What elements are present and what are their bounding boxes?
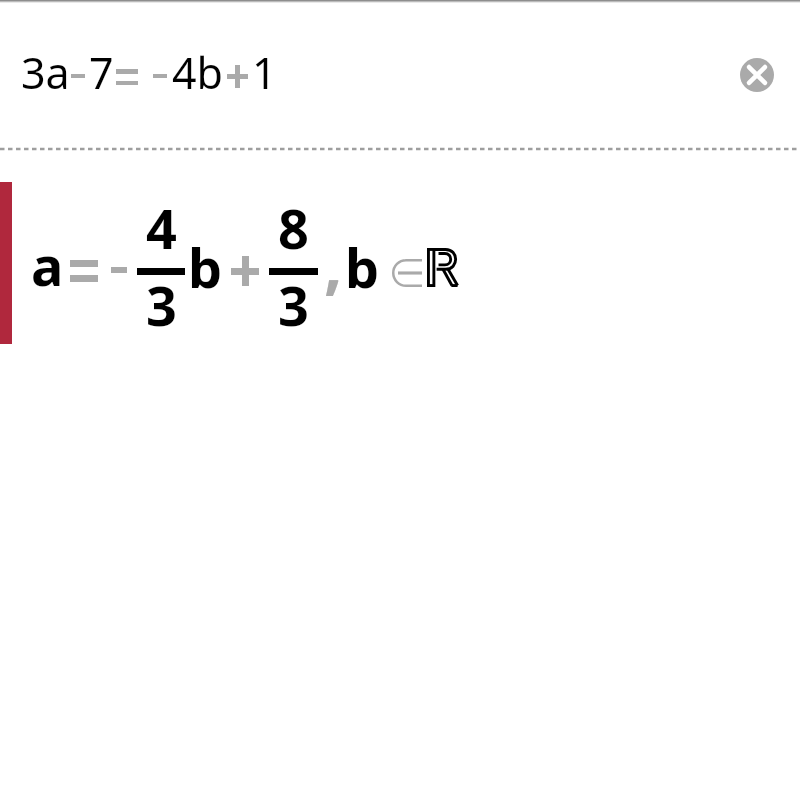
staticText: 1	[252, 43, 277, 102]
button[interactable]: Close	[740, 58, 774, 92]
staticText: 3	[278, 268, 309, 342]
staticText: 3	[146, 268, 177, 342]
staticText: 4	[146, 191, 177, 265]
staticText: ,	[324, 220, 343, 307]
staticText: a	[31, 228, 64, 302]
staticText: 8	[278, 191, 309, 265]
button[interactable]: Solution a = -4/3 b + 8/3	[0, 182, 800, 344]
staticText: b	[188, 230, 223, 304]
button[interactable]: Edit equation	[0, 3, 700, 147]
staticText: b	[345, 230, 380, 304]
staticText: 4b	[172, 43, 224, 102]
staticText: 7	[89, 43, 114, 102]
staticText: 3a	[21, 43, 70, 102]
